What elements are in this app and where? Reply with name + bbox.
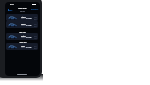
staticText: 995 xyxy=(34,18,37,20)
button[interactable]: Kicks xyxy=(6,43,38,50)
button[interactable]: Directions xyxy=(31,8,39,10)
staticText: Back xyxy=(9,9,13,11)
staticText: Nissan Lincoln xyxy=(18,8,27,10)
staticText: SV FWD xyxy=(26,46,32,48)
staticText: 770 xyxy=(34,37,37,39)
staticText: $28, xyxy=(34,16,37,18)
staticText: SR FWD xyxy=(26,36,32,38)
staticText: 9:41 xyxy=(10,3,15,6)
staticText: Inventory xyxy=(20,11,25,12)
staticText: Kicks xyxy=(21,45,25,47)
staticText: Stock #N24815 xyxy=(21,18,30,20)
button[interactable]: Altima xyxy=(6,14,38,21)
staticText: $24, xyxy=(34,35,37,37)
staticText: $21, xyxy=(34,45,37,47)
staticText: Rogue xyxy=(21,23,26,25)
staticText: Directions xyxy=(31,8,39,10)
staticText: 300 xyxy=(34,47,37,49)
staticText: SL AWD xyxy=(26,24,32,26)
button[interactable]: Rogue xyxy=(6,21,38,28)
staticText: Sentra xyxy=(21,35,26,37)
staticText: 450 xyxy=(34,25,37,27)
button[interactable]: Sentra xyxy=(6,33,38,40)
staticText: $31, xyxy=(34,23,37,25)
staticText: Stock #N22905 xyxy=(21,47,30,49)
staticText: SV AWD xyxy=(26,17,32,19)
staticText: Stock #N24112 xyxy=(21,37,30,39)
staticText: Altima xyxy=(21,16,26,18)
staticText: New Cars xyxy=(19,31,26,33)
staticText: Stock #N23710 xyxy=(21,25,30,27)
button[interactable]: Back xyxy=(8,8,13,11)
staticText: Used Cars xyxy=(19,41,27,43)
